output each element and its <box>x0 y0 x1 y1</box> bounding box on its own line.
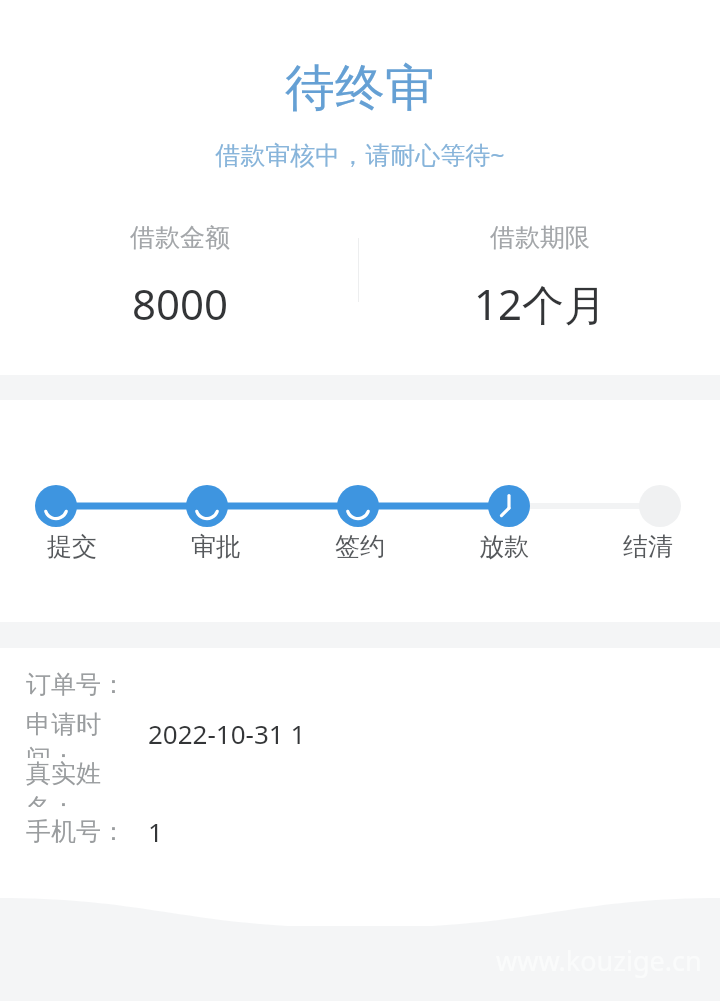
staticText: 借款金额 <box>130 222 230 253</box>
staticText: 8000 <box>132 275 229 332</box>
staticText: 1 <box>148 814 163 849</box>
staticText: 审批 <box>191 531 241 562</box>
staticText: 结清 <box>623 531 673 562</box>
staticText: 待终审 <box>0 57 720 120</box>
staticText: 借款期限 <box>490 222 590 253</box>
staticText: 真实姓名： <box>26 758 148 807</box>
staticText: 订单号： <box>26 669 126 700</box>
staticText: 2022-10-31 1 <box>148 716 306 751</box>
button[interactable]: 签约 <box>288 531 432 562</box>
button[interactable]: 提交 <box>0 531 144 562</box>
button[interactable]: 放款 <box>432 531 576 562</box>
button[interactable]: 结清 <box>576 531 720 562</box>
staticText: 提交 <box>47 531 97 562</box>
staticText: 放款 <box>479 531 529 562</box>
staticText: 手机号： <box>26 816 126 847</box>
staticText: 申请时间： <box>26 709 148 758</box>
staticText: 签约 <box>335 531 385 562</box>
button[interactable]: 审批 <box>144 531 288 562</box>
staticText: 借款审核中，请耐心等待~ <box>0 137 720 171</box>
staticText: 12个月 <box>474 275 607 332</box>
